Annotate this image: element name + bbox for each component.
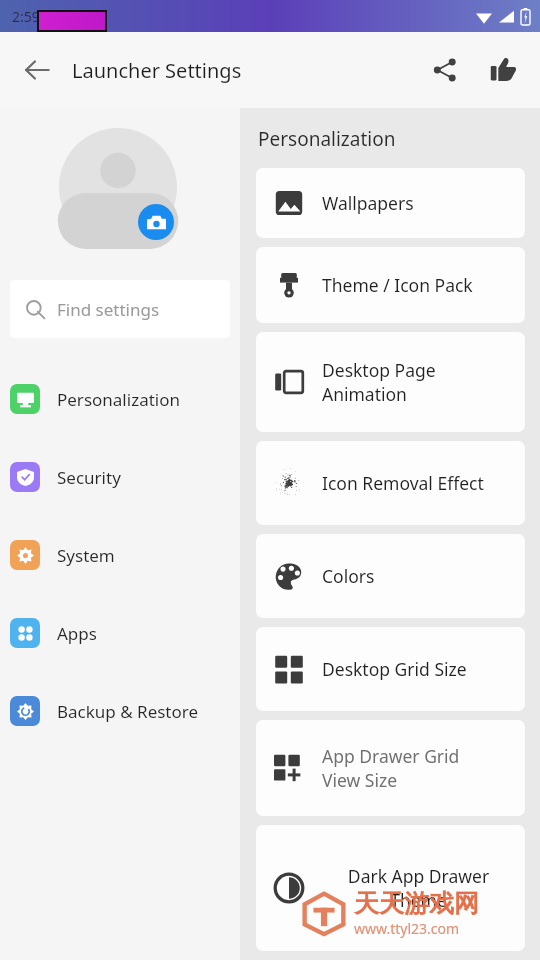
staticText: www.ttyl23.com bbox=[354, 919, 460, 938]
staticText: Colors bbox=[322, 564, 375, 588]
staticText: App Drawer Grid View Size bbox=[322, 744, 460, 792]
staticText: Theme / Icon Pack bbox=[322, 273, 473, 297]
button[interactable]: Desktop Grid Size bbox=[256, 627, 525, 711]
button[interactable]: Personalization bbox=[0, 360, 240, 438]
staticText: Desktop Grid Size bbox=[322, 657, 467, 681]
button[interactable]: Share bbox=[422, 47, 468, 93]
button[interactable]: Dark App Drawer Theme bbox=[256, 825, 525, 951]
staticText: System bbox=[57, 544, 115, 567]
button[interactable]: App Drawer Grid View Size bbox=[256, 720, 525, 816]
staticText: Personalization bbox=[57, 388, 180, 411]
staticText: 天天游戏网 bbox=[354, 888, 479, 919]
staticText: Apps bbox=[57, 622, 97, 645]
button[interactable]: Backup & Restore bbox=[0, 672, 240, 750]
staticText: Security bbox=[57, 466, 121, 489]
button[interactable]: Back bbox=[14, 47, 60, 93]
button[interactable]: Security bbox=[0, 438, 240, 516]
staticText: Desktop Page Animation bbox=[322, 358, 436, 406]
button[interactable]: Desktop Page Animation bbox=[256, 332, 525, 432]
button[interactable]: Rate this app bbox=[480, 47, 526, 93]
button[interactable]: Wallpapers bbox=[256, 168, 525, 238]
staticText: Launcher Settings bbox=[72, 57, 242, 84]
staticText: Wallpapers bbox=[322, 191, 414, 215]
button[interactable]: Colors bbox=[256, 534, 525, 618]
button[interactable]: Change photo bbox=[138, 204, 174, 240]
staticText: Icon Removal Effect bbox=[322, 471, 484, 495]
staticText: Personalization bbox=[258, 126, 396, 152]
staticText: Backup & Restore bbox=[57, 700, 199, 723]
button[interactable]: Find settings bbox=[10, 280, 230, 338]
button[interactable]: Apps bbox=[0, 594, 240, 672]
staticText: Dark App Drawer Theme bbox=[322, 864, 515, 912]
button[interactable]: Icon Removal Effect bbox=[256, 441, 525, 525]
button[interactable]: System bbox=[0, 516, 240, 594]
staticText: 2:59 bbox=[12, 7, 40, 26]
staticText: Find settings bbox=[57, 298, 160, 321]
button[interactable]: Theme / Icon Pack bbox=[256, 247, 525, 323]
